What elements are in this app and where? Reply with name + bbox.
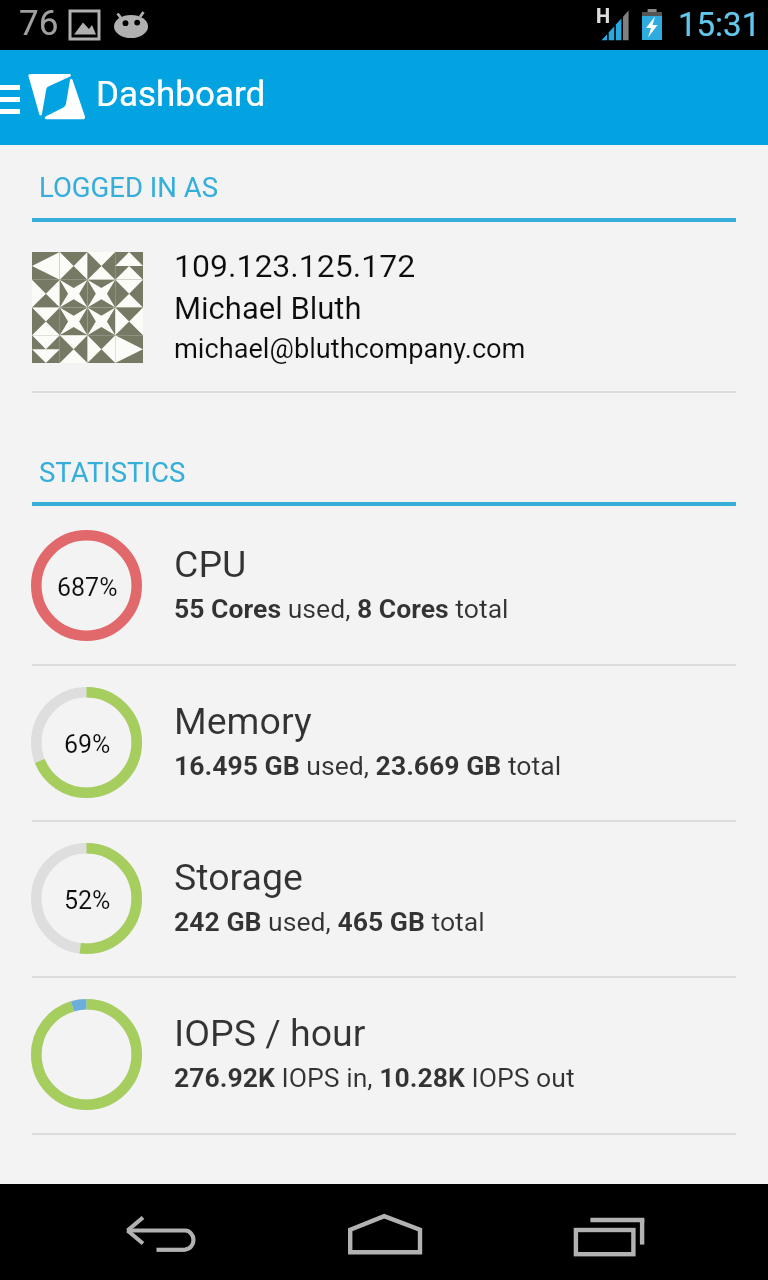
staticText: Storage [174, 855, 303, 899]
staticText: 16.495 GB used, 23.669 GB total [174, 750, 562, 781]
staticText: H [596, 4, 611, 27]
staticText: Dashboard [96, 74, 266, 115]
staticText: LOGGED IN AS [39, 171, 219, 203]
staticText: 15:31 [678, 5, 761, 44]
staticText: 52% [64, 886, 111, 915]
staticText: michael@bluthcompany.com [174, 333, 526, 365]
staticText: 109.123.125.172 [174, 247, 416, 285]
button[interactable]: 109.123.125.172 [32, 240, 736, 376]
button[interactable]: Home [335, 1206, 435, 1258]
staticText: Memory [174, 699, 312, 743]
staticText: 276.92K IOPS in, 10.28K IOPS out [174, 1062, 575, 1093]
button[interactable]: 52% [0, 820, 768, 976]
staticText: STATISTICS [39, 456, 186, 488]
staticText: 687% [57, 573, 118, 602]
staticText: IOPS / hour [174, 1011, 366, 1055]
staticText: 242 GB used, 465 GB total [174, 906, 485, 937]
button[interactable]: IOPS / hour [0, 976, 768, 1133]
staticText: 55 Cores used, 8 Cores total [174, 593, 509, 624]
staticText: 76 [19, 3, 59, 44]
button[interactable]: 69% [0, 664, 768, 820]
staticText: CPU [174, 542, 247, 586]
button[interactable]: 687% [0, 506, 768, 664]
staticText: 69% [64, 730, 111, 759]
button[interactable]: Recent apps [562, 1206, 662, 1258]
button[interactable]: Back [112, 1206, 210, 1258]
button[interactable]: Open navigation drawer [0, 68, 28, 128]
staticText: Michael Bluth [174, 290, 362, 326]
